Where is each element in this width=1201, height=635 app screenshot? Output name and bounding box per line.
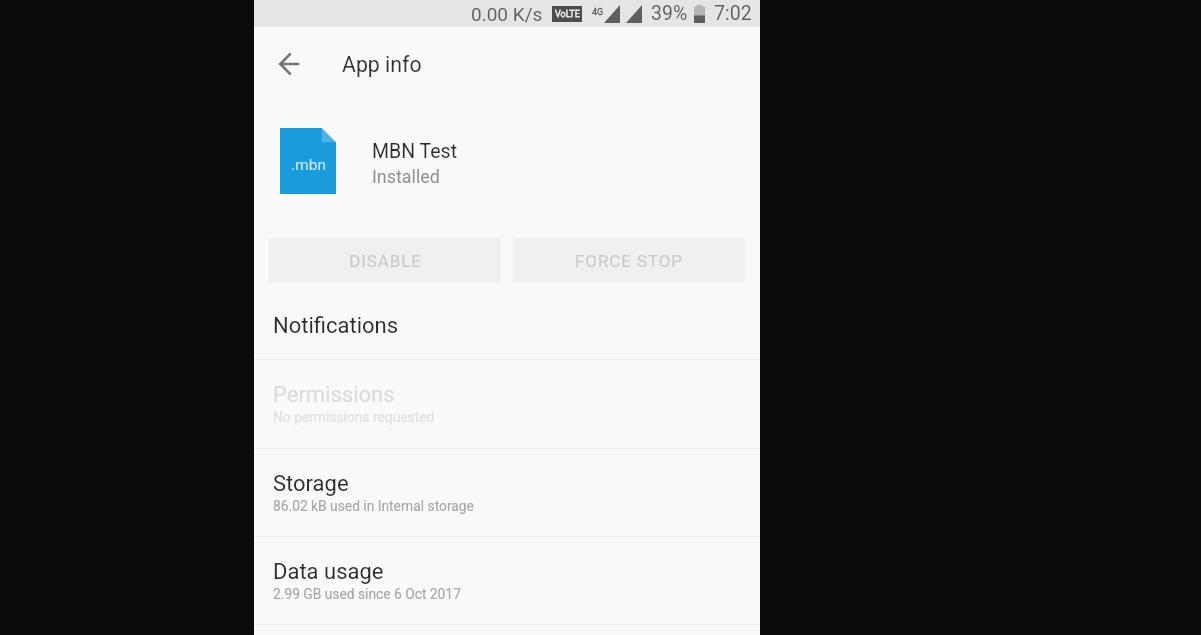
staticText: Installed xyxy=(372,166,440,187)
button[interactable]: FORCE STOP xyxy=(513,238,745,283)
button[interactable]: Permissions xyxy=(254,360,760,448)
staticText: FORCE STOP xyxy=(575,251,683,271)
button[interactable]: Back xyxy=(266,41,312,87)
staticText: Permissions xyxy=(273,382,395,408)
staticText: Storage xyxy=(273,471,349,497)
button[interactable]: Storage xyxy=(254,449,760,536)
staticText: 86.02 kB used in Internal storage xyxy=(273,498,474,514)
staticText: 7:02 xyxy=(714,2,752,25)
staticText: No permissions requested xyxy=(273,409,435,425)
staticText: VoLTE xyxy=(555,9,580,20)
button[interactable]: DISABLE xyxy=(269,238,501,283)
staticText: 2.99 GB used since 6 Oct 2017 xyxy=(273,586,461,602)
staticText: App info xyxy=(342,52,422,77)
staticText: .mbn xyxy=(291,156,326,174)
staticText: Notifications xyxy=(273,313,399,339)
staticText: 0.00 K/s xyxy=(471,3,543,25)
button[interactable]: Data usage xyxy=(254,537,760,624)
staticText: MBN Test xyxy=(372,140,458,163)
staticText: 4G xyxy=(592,7,604,18)
staticText: 39% xyxy=(651,2,688,25)
button[interactable]: Notifications xyxy=(254,292,760,359)
staticText: DISABLE xyxy=(349,251,422,271)
staticText: Data usage xyxy=(273,559,384,585)
